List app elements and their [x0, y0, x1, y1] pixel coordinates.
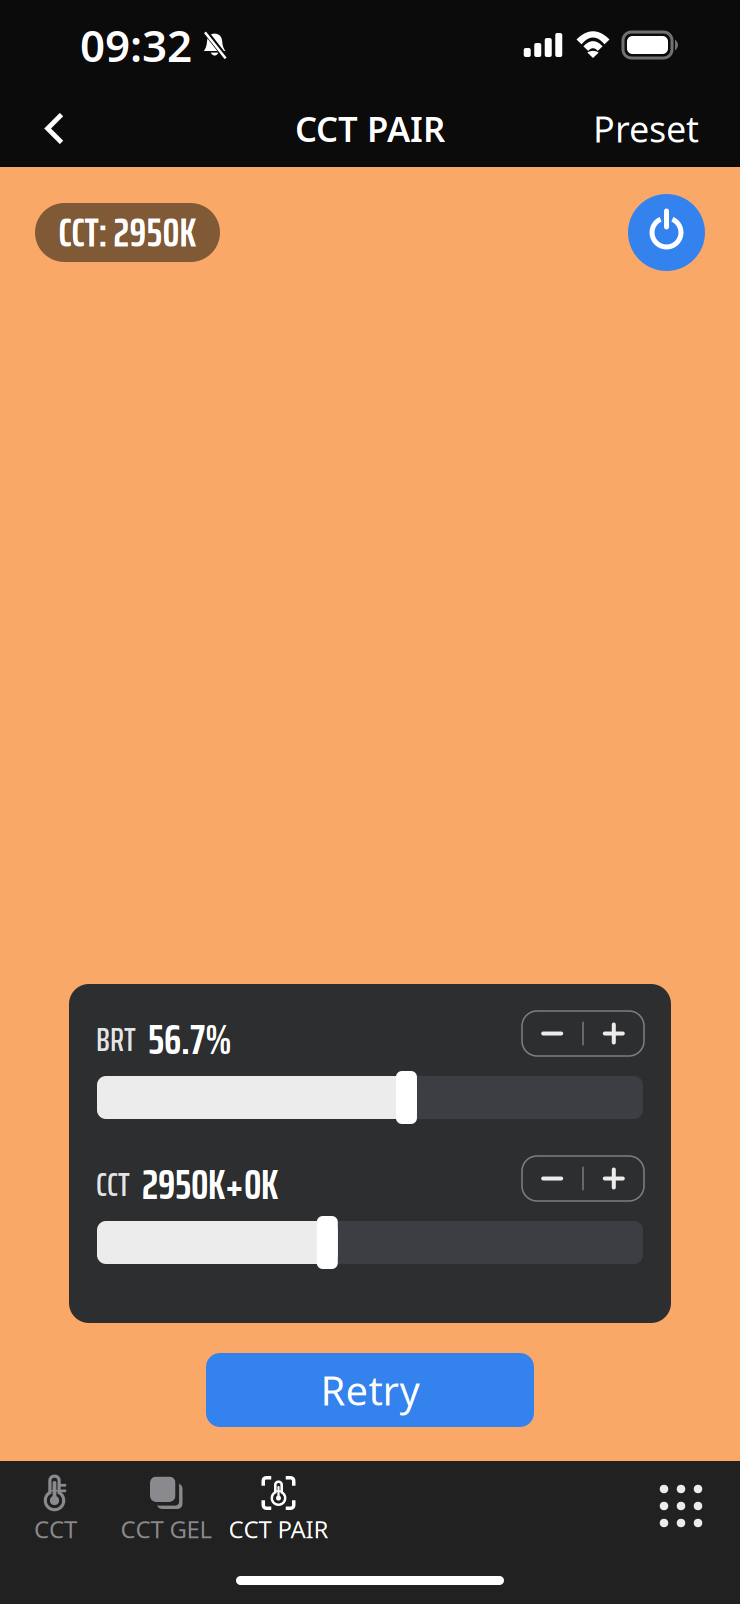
button[interactable]: CCT PAIR: [222, 1461, 335, 1551]
staticText: 56.7%: [148, 1007, 232, 1072]
button[interactable]: More options: [622, 1461, 740, 1551]
button[interactable]: Increase: [584, 1156, 644, 1201]
staticText: Retry: [320, 1363, 419, 1416]
staticText: CCT GEL: [120, 1513, 212, 1545]
button[interactable]: CCT: [0, 1461, 111, 1551]
staticText: CCT PAIR: [295, 105, 445, 151]
staticText: CCT: 2950K: [58, 201, 196, 264]
staticText: CCT PAIR: [228, 1513, 328, 1545]
staticText: 2950K+0K: [142, 1152, 278, 1217]
staticText: CCT: [34, 1513, 77, 1545]
staticText: CCT: [96, 1158, 130, 1211]
button[interactable]: Preset: [566, 87, 726, 170]
button[interactable]: Power: [628, 194, 705, 271]
button[interactable]: CCT GEL: [111, 1461, 222, 1551]
button[interactable]: Increase: [584, 1011, 644, 1056]
button[interactable]: Decrease: [522, 1156, 582, 1201]
staticText: BRT: [96, 1013, 136, 1066]
staticText: Preset: [593, 105, 699, 152]
button[interactable]: Back: [14, 92, 89, 165]
button[interactable]: Decrease: [522, 1011, 582, 1056]
staticText: 09:32: [80, 16, 192, 74]
button[interactable]: Retry: [206, 1353, 534, 1427]
